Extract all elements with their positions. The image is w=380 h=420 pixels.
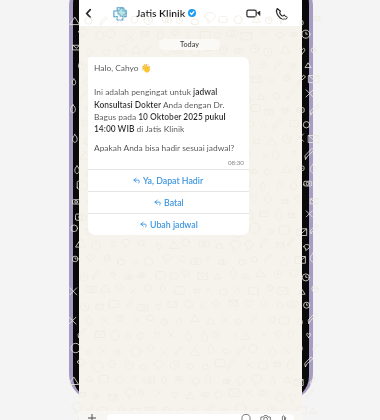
staticText: Ya, Dapat Hadir <box>143 175 204 186</box>
staticText: Batal <box>164 197 184 208</box>
button[interactable] <box>107 414 294 420</box>
button[interactable]: Ya, Dapat Hadir <box>88 170 249 191</box>
button[interactable]: Batal <box>88 192 249 213</box>
button[interactable]: Today <box>159 39 220 50</box>
staticText: 08:30 <box>228 159 244 166</box>
button[interactable]: Ubah jadwal <box>88 214 249 235</box>
staticText: Ini adalah pengingat untuk jadwal Konsul… <box>94 87 244 134</box>
staticText: Halo, Cahyo 👋 <box>94 63 152 73</box>
staticText: Today <box>180 40 199 49</box>
button[interactable]: Attach <box>86 413 97 420</box>
button[interactable]: Video call <box>243 3 263 23</box>
staticText: Apakah Anda bisa hadir sesuai jadwal? <box>94 143 235 153</box>
button[interactable]: Voice call <box>271 3 291 23</box>
staticText: Ubah jadwal <box>150 219 198 230</box>
button[interactable]: Back <box>79 4 97 22</box>
staticText: Jatis Klinik <box>136 7 186 19</box>
button[interactable]: Jatis Klinik <box>112 0 196 26</box>
